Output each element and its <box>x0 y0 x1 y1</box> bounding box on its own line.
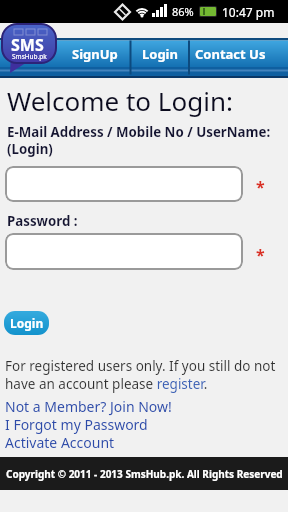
staticText: Contact Us <box>195 45 266 63</box>
staticText: Login <box>10 315 44 331</box>
staticText: Password : <box>7 212 78 230</box>
staticText: 10:47 pm <box>222 4 275 20</box>
button[interactable]: have an account please register. <box>5 375 208 393</box>
button[interactable]: I Forgot my Password <box>5 415 148 434</box>
staticText: * <box>256 244 265 266</box>
staticText: Copyright © 2011 - 2013 SmsHub.pk. All R… <box>6 467 283 481</box>
button[interactable]: Login <box>131 40 188 68</box>
staticText: * <box>256 176 265 198</box>
staticText: (Login) <box>7 140 53 158</box>
staticText: Welcome to Login: <box>7 83 233 118</box>
button[interactable]: Not a Member? Join Now! <box>5 397 172 416</box>
button[interactable]: SignUp <box>60 40 129 68</box>
button[interactable]: Contact Us <box>190 40 270 68</box>
button[interactable] <box>5 233 243 270</box>
button[interactable]: Login <box>4 311 49 335</box>
staticText: Login <box>142 45 178 63</box>
button[interactable]: SMS <box>2 23 58 75</box>
staticText: SignUp <box>72 45 118 63</box>
button[interactable]: Activate Account <box>5 433 115 452</box>
staticText: For registered users only. If you still … <box>5 357 276 375</box>
staticText: SMS <box>11 34 44 56</box>
staticText: E-Mail Address / Mobile No / UserName: <box>7 123 271 141</box>
staticText: 86% <box>172 4 194 19</box>
button[interactable] <box>5 166 243 202</box>
staticText: SmsHub.pk <box>12 52 47 61</box>
